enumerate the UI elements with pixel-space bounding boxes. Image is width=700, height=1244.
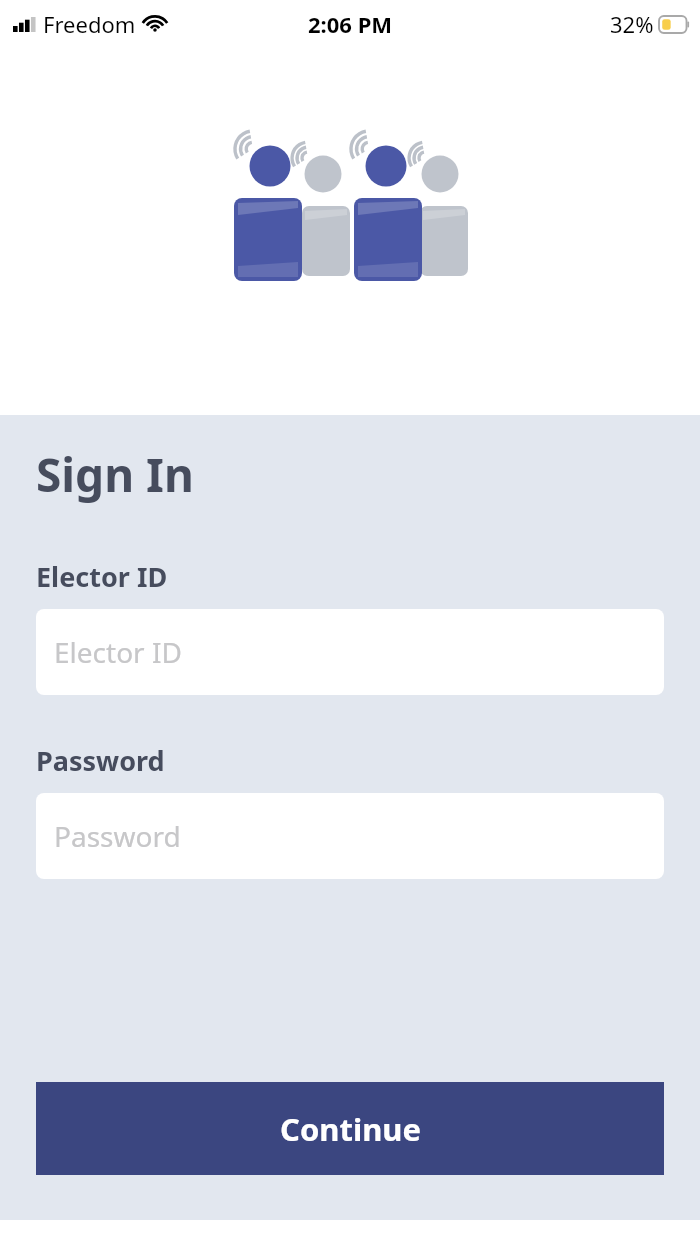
button[interactable]: Continue	[36, 1082, 664, 1175]
staticText: Continue	[280, 1108, 421, 1150]
staticText: Password	[54, 817, 181, 855]
button[interactable]: Password	[36, 793, 664, 879]
staticText: Freedom	[43, 9, 136, 39]
staticText: 2:06 PM	[308, 9, 393, 39]
staticText: Elector ID	[54, 633, 182, 671]
staticText: Password	[36, 742, 165, 779]
staticText: Sign In	[36, 443, 194, 506]
button[interactable]: Elector ID	[36, 609, 664, 695]
staticText: 32%	[610, 9, 654, 39]
staticText: Elector ID	[36, 558, 168, 595]
